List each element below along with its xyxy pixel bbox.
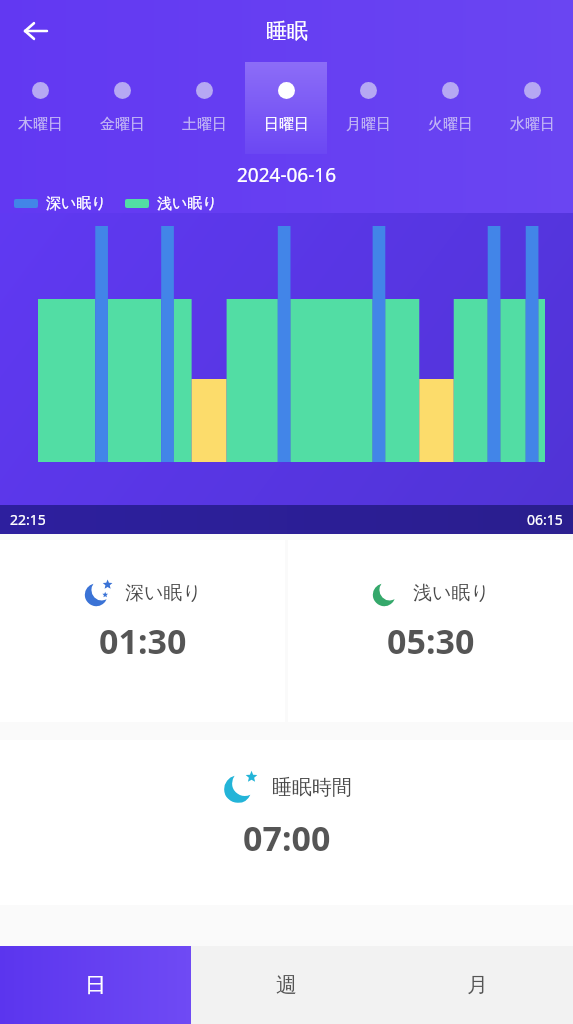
staticText: 07:00 bbox=[243, 815, 331, 861]
staticText: 睡眠 bbox=[266, 18, 308, 44]
staticText: 2024-06-16 bbox=[0, 162, 573, 188]
staticText: 浅い眠り bbox=[413, 581, 490, 605]
staticText: 土曜日 bbox=[182, 115, 227, 134]
staticText: 日曜日 bbox=[264, 115, 309, 134]
button[interactable]: 週 bbox=[191, 946, 382, 1024]
staticText: 日 bbox=[85, 972, 106, 998]
button[interactable]: 木曜日 bbox=[0, 62, 81, 154]
staticText: 木曜日 bbox=[18, 115, 63, 134]
staticText: 22:15 bbox=[10, 510, 46, 529]
button[interactable]: 月曜日 bbox=[327, 62, 409, 154]
staticText: 水曜日 bbox=[510, 115, 555, 134]
staticText: 深い眠り bbox=[46, 194, 107, 213]
button[interactable]: 深い眠り bbox=[0, 540, 285, 722]
staticText: 浅い眠り bbox=[157, 194, 218, 213]
staticText: 金曜日 bbox=[100, 115, 145, 134]
staticText: 月曜日 bbox=[346, 115, 391, 134]
staticText: 05:30 bbox=[387, 618, 475, 664]
button[interactable]: 金曜日 bbox=[81, 62, 163, 154]
button[interactable]: 月 bbox=[382, 946, 573, 1024]
staticText: 01:30 bbox=[99, 618, 187, 664]
staticText: 火曜日 bbox=[428, 115, 473, 134]
button[interactable]: 日曜日 bbox=[245, 62, 327, 154]
button[interactable]: 睡眠時間 bbox=[0, 740, 573, 905]
button[interactable]: Back bbox=[12, 7, 60, 55]
staticText: 月 bbox=[467, 972, 488, 998]
button[interactable]: 火曜日 bbox=[409, 62, 491, 154]
button[interactable]: 水曜日 bbox=[491, 62, 573, 154]
staticText: 週 bbox=[276, 972, 297, 998]
staticText: 06:15 bbox=[527, 510, 563, 529]
button[interactable]: 土曜日 bbox=[163, 62, 245, 154]
staticText: 睡眠時間 bbox=[272, 775, 352, 800]
button[interactable]: 日 bbox=[0, 946, 191, 1024]
button[interactable]: 浅い眠り bbox=[288, 540, 573, 722]
staticText: 深い眠り bbox=[125, 581, 202, 605]
